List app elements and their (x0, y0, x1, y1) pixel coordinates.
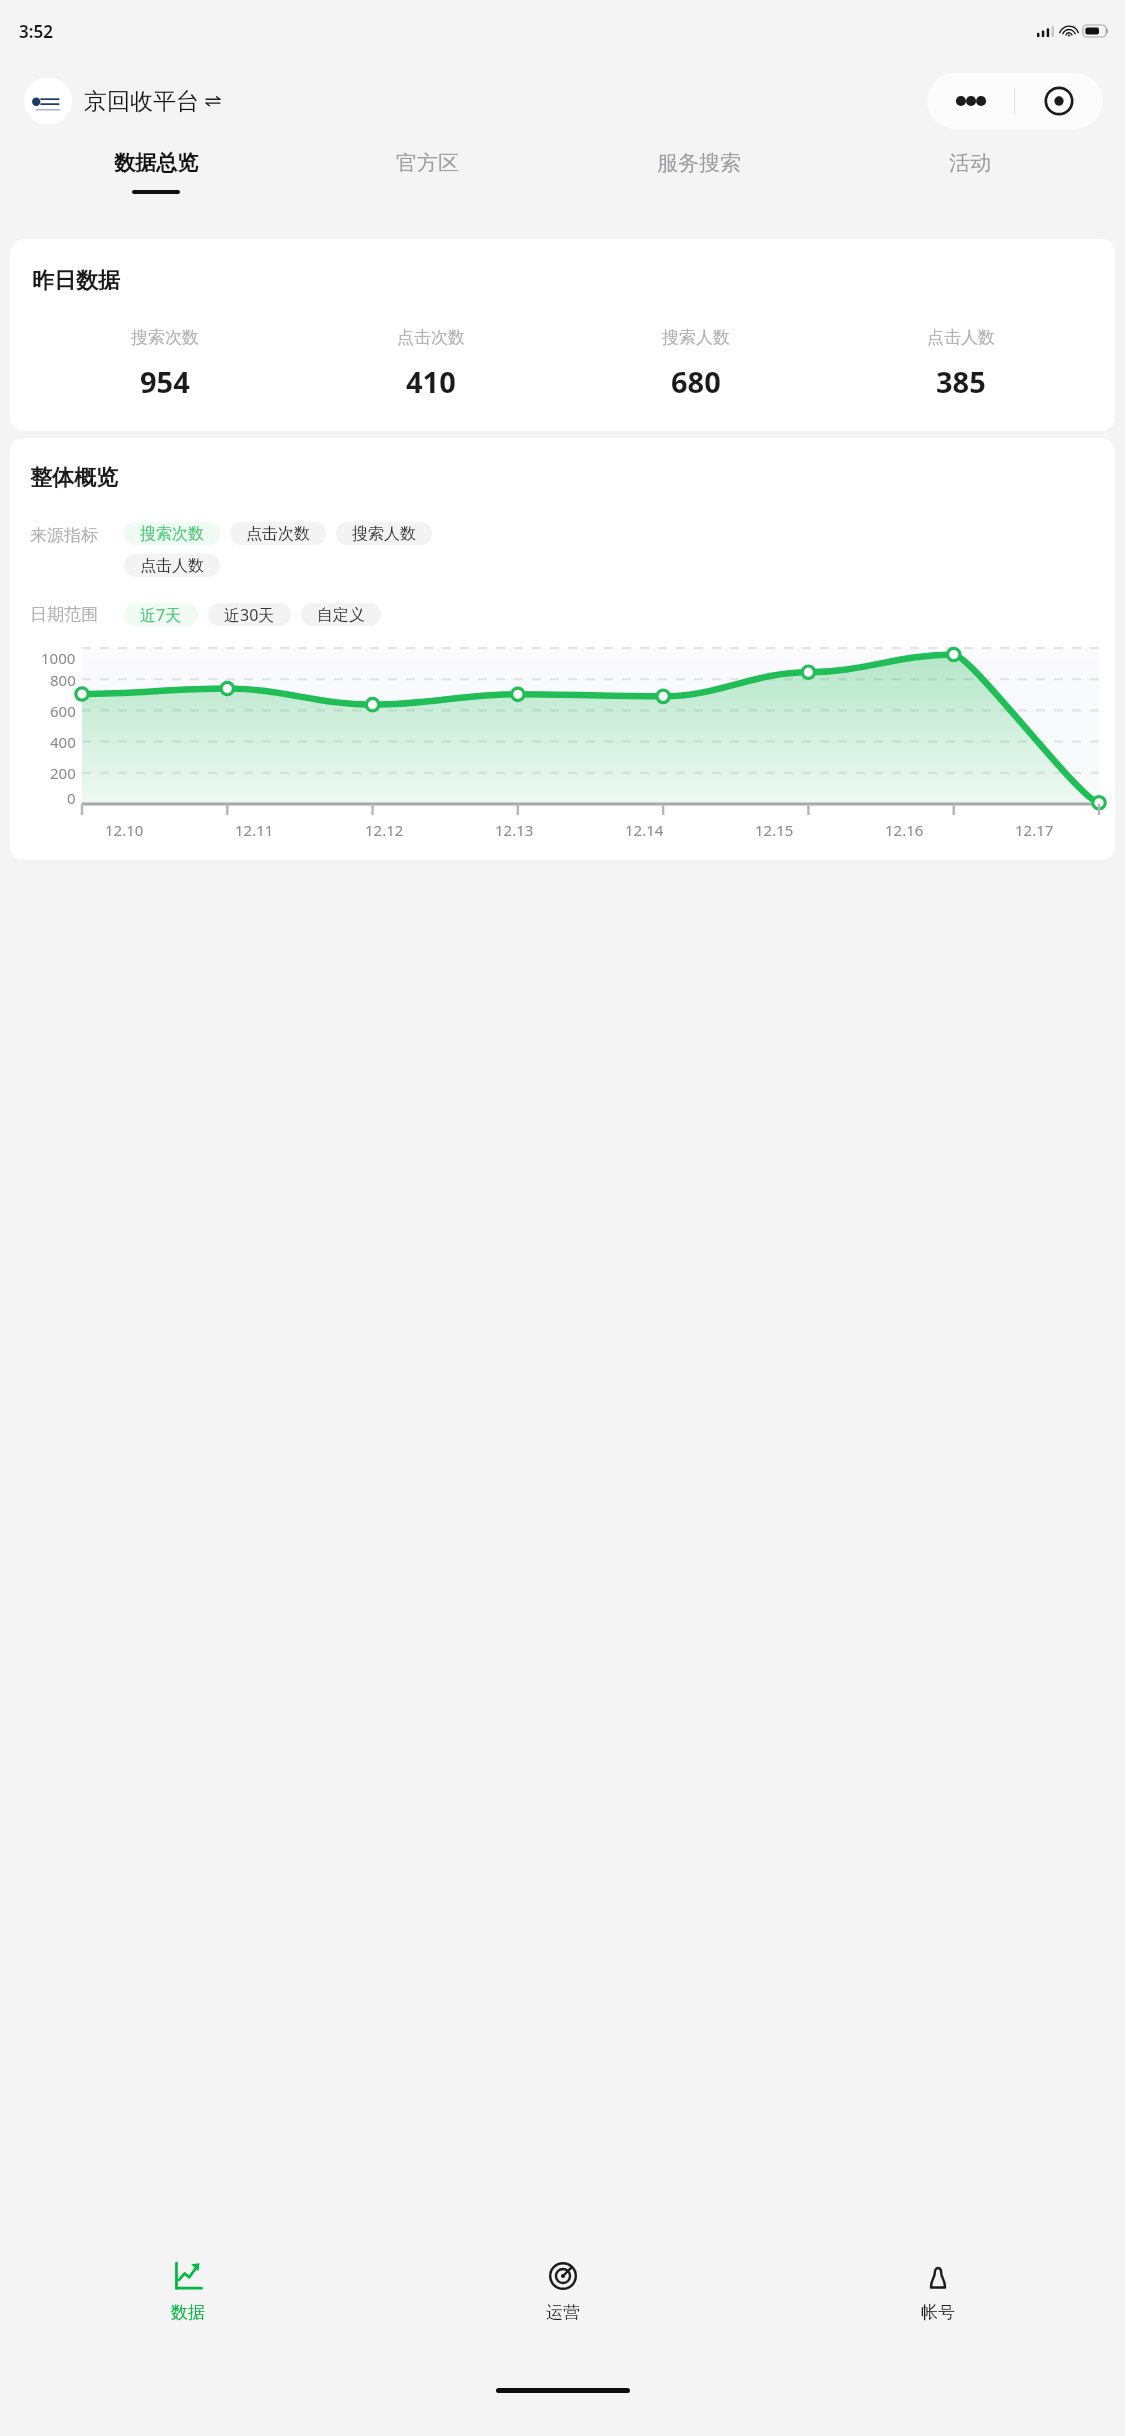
staticText: 来源指标 (30, 525, 98, 546)
staticText: 200 (50, 763, 76, 783)
staticText: 12.12 (365, 820, 404, 840)
staticText: 日期范围 (30, 604, 98, 625)
staticText: 近30天 (224, 604, 275, 626)
staticText: 搜索次数 (140, 524, 204, 544)
staticText: 活动 (949, 150, 991, 176)
staticText: 1000 (41, 648, 76, 664)
button[interactable]: 搜索次数 (124, 522, 220, 545)
button[interactable]: 服务搜索 (563, 140, 834, 224)
button[interactable]: 点击次数 (230, 522, 326, 545)
staticText: 数据 (171, 2302, 205, 2323)
button[interactable]: 京回收平台 (24, 77, 222, 125)
button[interactable]: 搜索人数 (336, 522, 432, 545)
staticText: 点击次数 (397, 327, 465, 348)
staticText: 整体概览 (30, 464, 118, 492)
button[interactable]: 近7天 (124, 603, 198, 626)
button[interactable]: 点击人数 (124, 554, 220, 577)
staticText: 12.13 (495, 820, 534, 840)
staticText: 12.14 (625, 820, 664, 840)
button[interactable]: 帐号 (750, 2238, 1125, 2388)
staticText: 服务搜索 (657, 150, 741, 176)
staticText: 385 (936, 362, 986, 401)
staticText: 12.11 (235, 820, 274, 840)
staticText: 3:52 (19, 20, 53, 43)
button[interactable]: 近30天 (208, 603, 291, 626)
staticText: 12.15 (755, 820, 794, 840)
button[interactable]: 活动 (834, 140, 1105, 224)
staticText: 12.17 (1015, 820, 1054, 840)
button[interactable]: 运营 (375, 2238, 750, 2388)
staticText: 400 (50, 732, 76, 752)
staticText: 点击人数 (140, 556, 204, 576)
button[interactable]: 官方区 (292, 140, 563, 224)
staticText: 410 (406, 362, 456, 401)
staticText: 运营 (546, 2302, 580, 2323)
staticText: 12.10 (105, 820, 144, 840)
staticText: 数据总览 (114, 150, 198, 176)
staticText: 点击次数 (246, 524, 310, 544)
staticText: 954 (140, 362, 190, 401)
button[interactable]: 自定义 (301, 603, 381, 626)
staticText: 600 (50, 701, 76, 721)
staticText: 昨日数据 (32, 267, 120, 295)
button[interactable]: Close mini program (1015, 73, 1103, 129)
staticText: 官方区 (396, 150, 459, 176)
button[interactable]: More options (927, 73, 1014, 129)
staticText: 680 (671, 362, 721, 401)
staticText: 近7天 (140, 604, 182, 626)
staticText: 帐号 (921, 2302, 955, 2323)
staticText: 搜索次数 (131, 327, 199, 348)
staticText: 点击人数 (927, 327, 995, 348)
staticText: 自定义 (317, 605, 365, 625)
button[interactable]: 数据 (0, 2238, 375, 2388)
staticText: 0 (67, 788, 76, 804)
staticText: 搜索人数 (662, 327, 730, 348)
staticText: 800 (50, 670, 76, 690)
staticText: 12.16 (885, 820, 924, 840)
staticText: 搜索人数 (352, 524, 416, 544)
staticText: 京回收平台 (84, 87, 199, 116)
button[interactable]: 数据总览 (20, 140, 292, 224)
